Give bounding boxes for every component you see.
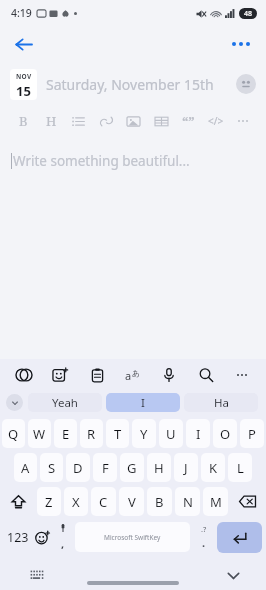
button[interactable]: Voice input [157,363,181,387]
button[interactable]: Backspace [231,487,264,516]
button[interactable]: L [228,453,252,482]
button[interactable]: S [40,453,63,482]
button[interactable]: X [64,487,88,516]
staticText: 123 [7,529,29,546]
staticText: X [72,493,80,511]
button[interactable]: O [213,419,237,448]
staticText: P [248,425,256,443]
button[interactable]: Ha [184,393,258,412]
button[interactable]: More keyboard options [230,363,254,387]
staticText: Write something beautiful... [13,152,190,170]
button[interactable]: V [119,487,144,516]
button[interactable]: Search [194,363,218,387]
staticText: E [62,425,70,443]
staticText: N [183,493,193,511]
button[interactable]: 123 [4,521,32,553]
button[interactable]: More options [224,27,258,61]
button[interactable]: Yeah [28,393,102,412]
button[interactable]: Bulleted list [67,110,89,132]
button[interactable]: Y [132,419,156,448]
button[interactable]: M [203,487,228,516]
button[interactable]: Write something beautiful... [11,152,255,170]
button[interactable]: R [80,419,103,448]
button[interactable]: H [147,453,171,482]
staticText: Yeah [52,395,78,411]
staticText: “” [182,112,195,130]
staticText: J [184,459,188,477]
button[interactable]: C [91,487,116,516]
staticText: T [114,425,122,443]
button[interactable]: E [54,419,77,448]
staticText: R [87,425,96,443]
button[interactable]: Change keyboard [26,564,48,586]
button[interactable]: D [66,453,90,482]
staticText: S [48,459,56,477]
staticText: W [33,425,46,443]
button[interactable]: J [174,453,198,482]
button[interactable]: U [159,419,183,448]
button[interactable]: A [14,453,37,482]
staticText: I [141,395,145,411]
button[interactable]: Heading [40,110,62,132]
staticText: U [166,425,176,443]
staticText: D [73,459,83,477]
staticText: C [99,493,108,511]
button[interactable]: W [28,419,51,448]
button[interactable]: Shift [2,487,34,516]
staticText: 48 [244,9,253,19]
staticText: Q [8,425,19,443]
staticText: あ [132,368,141,378]
button[interactable]: F [93,453,117,482]
button[interactable]: Clipboard [85,363,109,387]
staticText: , [61,536,65,551]
staticText: G [127,459,137,477]
staticText: Z [45,493,53,511]
button[interactable]: Space [75,522,190,552]
button[interactable]: Punctuation [192,521,215,553]
button[interactable]: More formatting [232,110,254,132]
button[interactable]: Enter [217,522,262,553]
button[interactable]: Table [150,110,172,132]
staticText: H [46,112,57,130]
button[interactable]: Z [37,487,61,516]
button[interactable]: I [186,419,210,448]
button[interactable]: Expand suggestions [6,394,23,411]
button[interactable]: Voice and comma [53,521,73,553]
staticText: M [210,493,222,511]
button[interactable]: Hide keyboard [222,564,244,586]
staticText: V [128,493,136,511]
button[interactable]: Bold [12,110,34,132]
staticText: 15 [16,82,31,100]
staticText: L [237,459,244,477]
button[interactable]: Back [6,27,40,61]
button[interactable]: Emoji [32,521,53,553]
staticText: B [155,493,164,511]
button[interactable]: Image [122,110,144,132]
button[interactable]: Code [205,110,227,132]
button[interactable]: K [201,453,225,482]
button[interactable]: G [120,453,144,482]
staticText: Saturday, November 15th [46,75,236,94]
button[interactable]: Quote [177,110,199,132]
staticText: I [196,425,201,443]
button[interactable]: B [147,487,172,516]
staticText: .? [201,524,207,534]
staticText: K [209,459,218,477]
button[interactable]: Q [2,419,25,448]
button[interactable]: N [175,487,200,516]
button[interactable]: Mood [236,74,256,94]
button[interactable]: SwiftKey [12,363,36,387]
button[interactable]: I [106,393,180,412]
staticText: H [154,459,164,477]
staticText: Y [140,425,148,443]
staticText: Microsoft SwiftKey [104,533,161,542]
staticText: . [202,535,206,550]
staticText: a [125,368,132,383]
button[interactable]: Translate [121,363,145,387]
staticText: NOV [16,72,32,81]
button[interactable]: T [106,419,129,448]
button[interactable]: P [240,419,264,448]
button[interactable]: Stickers [48,363,72,387]
button[interactable]: NOV [10,69,37,100]
button[interactable]: Link [95,110,117,132]
